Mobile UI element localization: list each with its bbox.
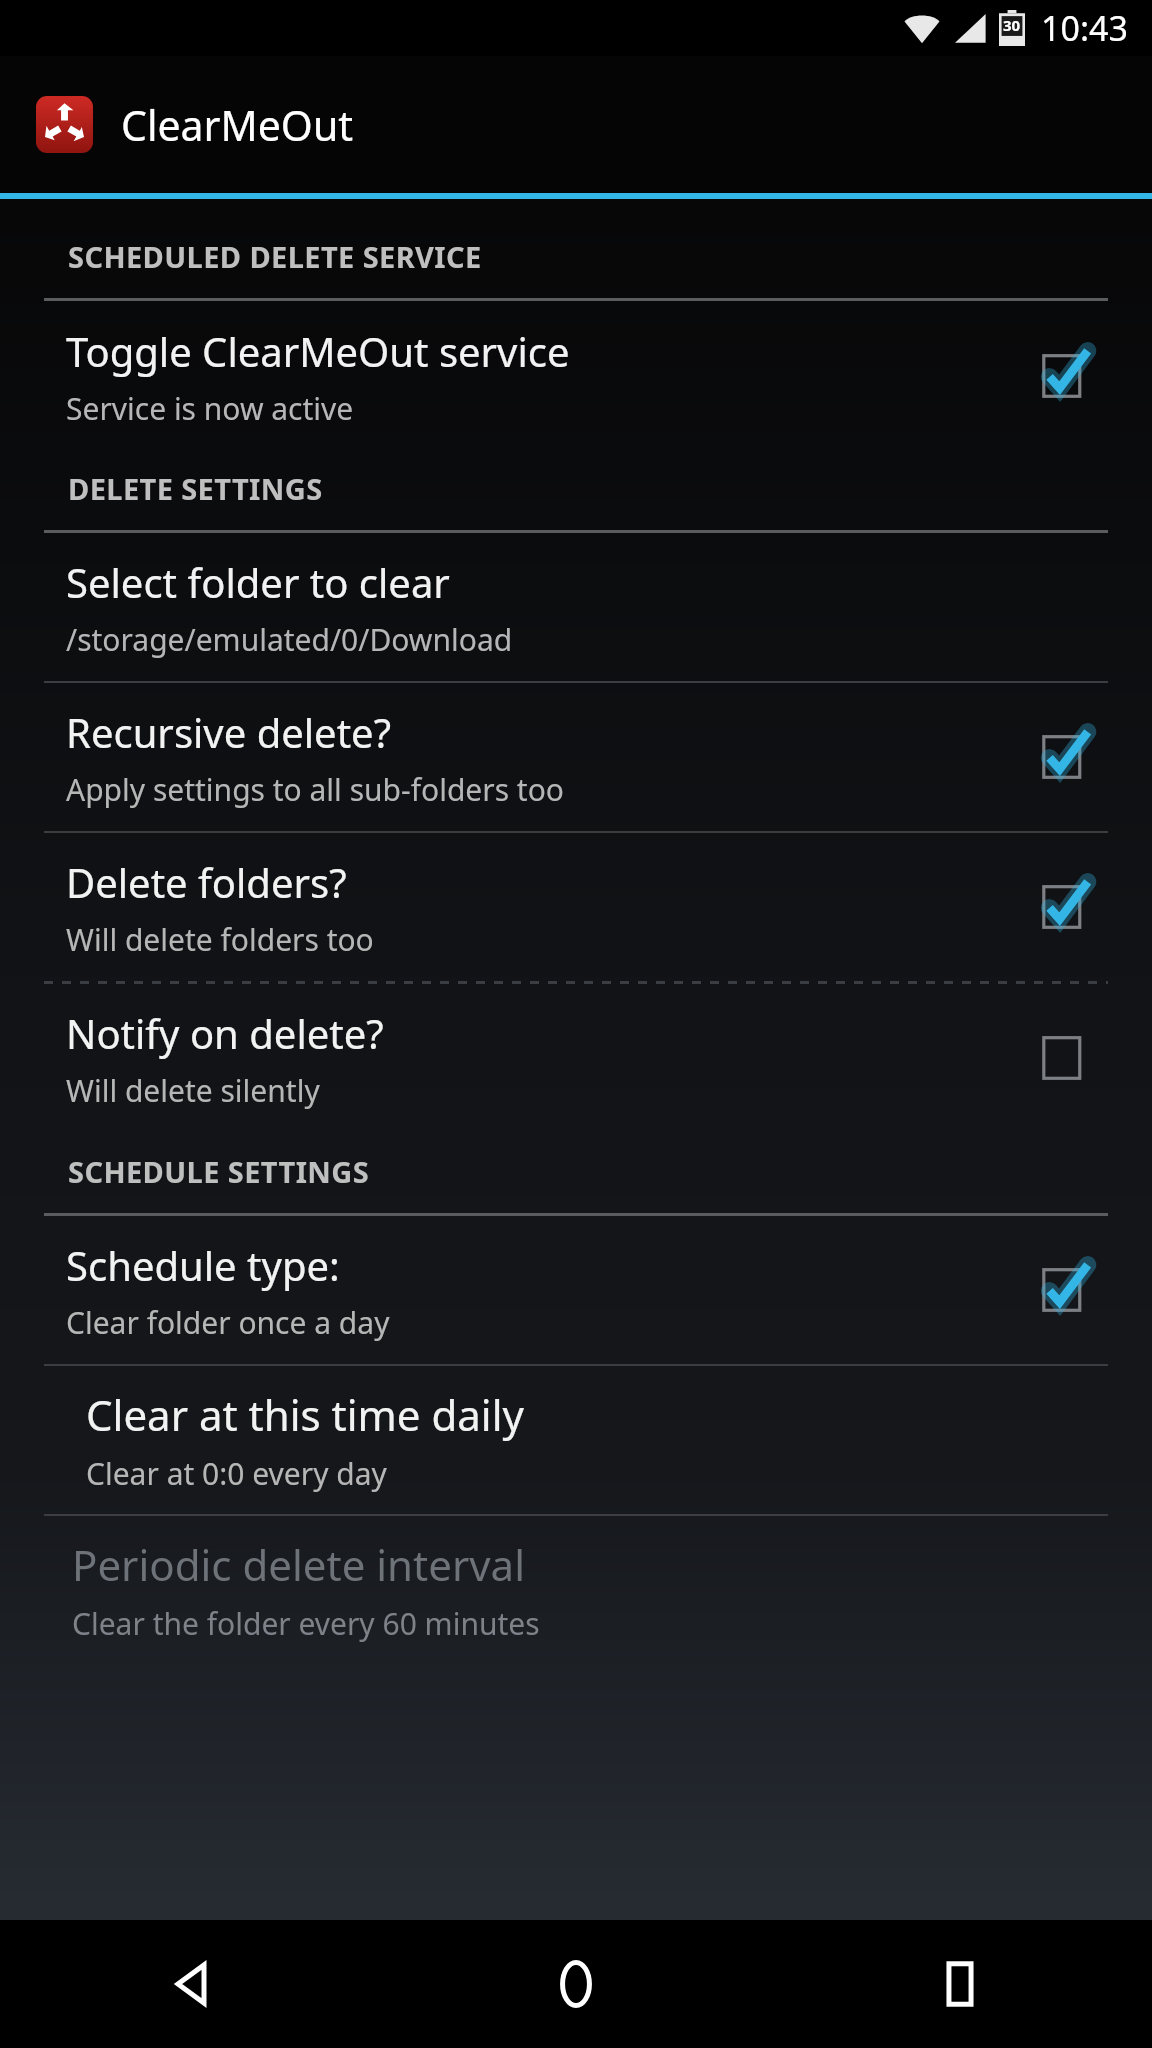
button[interactable]: Checked	[1038, 878, 1096, 936]
staticText: Recursive delete?	[66, 705, 392, 759]
staticText: Clear folder once a day	[66, 1302, 390, 1343]
staticText: Select folder to clear	[66, 555, 450, 609]
button[interactable]: Recursive delete?	[0, 683, 1152, 831]
button[interactable]: Schedule type:	[0, 1216, 1152, 1364]
button[interactable]: Home	[384, 1920, 768, 2048]
staticText: Toggle ClearMeOut service	[66, 324, 570, 378]
staticText: SCHEDULE SETTINGS	[68, 1152, 370, 1191]
staticText: 10:43	[1041, 5, 1128, 51]
button[interactable]: Unchecked	[1038, 1029, 1096, 1087]
button[interactable]: Clear at this time daily	[0, 1366, 1152, 1514]
staticText: 30	[1003, 15, 1021, 35]
staticText: Schedule type:	[66, 1238, 340, 1292]
button[interactable]: Checked	[1038, 1261, 1096, 1319]
button[interactable]: Notify on delete?	[0, 984, 1152, 1132]
staticText: Will delete folders too	[66, 919, 374, 960]
staticText: Clear at this time daily	[86, 1386, 524, 1443]
button[interactable]: Periodic delete interval	[0, 1516, 1152, 1664]
staticText: Periodic delete interval	[72, 1536, 525, 1593]
staticText: SCHEDULED DELETE SERVICE	[68, 237, 482, 276]
button[interactable]: ClearMeOut	[0, 56, 1152, 193]
button[interactable]: Toggle ClearMeOut service	[0, 301, 1152, 451]
button[interactable]: Delete folders?	[0, 833, 1152, 981]
button[interactable]: Checked	[1038, 347, 1096, 405]
button[interactable]: Back	[0, 1920, 384, 2048]
button[interactable]: Checked	[1038, 728, 1096, 786]
button[interactable]: Select folder to clear	[0, 533, 1152, 681]
staticText: Will delete silently	[66, 1070, 320, 1111]
staticText: ClearMeOut	[121, 97, 354, 153]
staticText: Clear the folder every 60 minutes	[72, 1603, 540, 1644]
button[interactable]: Recents	[768, 1920, 1152, 2048]
staticText: Delete folders?	[66, 855, 347, 909]
staticText: Service is now active	[66, 388, 354, 429]
staticText: Apply settings to all sub-folders too	[66, 769, 564, 810]
staticText: Notify on delete?	[66, 1006, 384, 1060]
staticText: Clear at 0:0 every day	[86, 1453, 387, 1494]
staticText: DELETE SETTINGS	[68, 469, 323, 508]
staticText: /storage/emulated/0/Download	[66, 619, 513, 660]
